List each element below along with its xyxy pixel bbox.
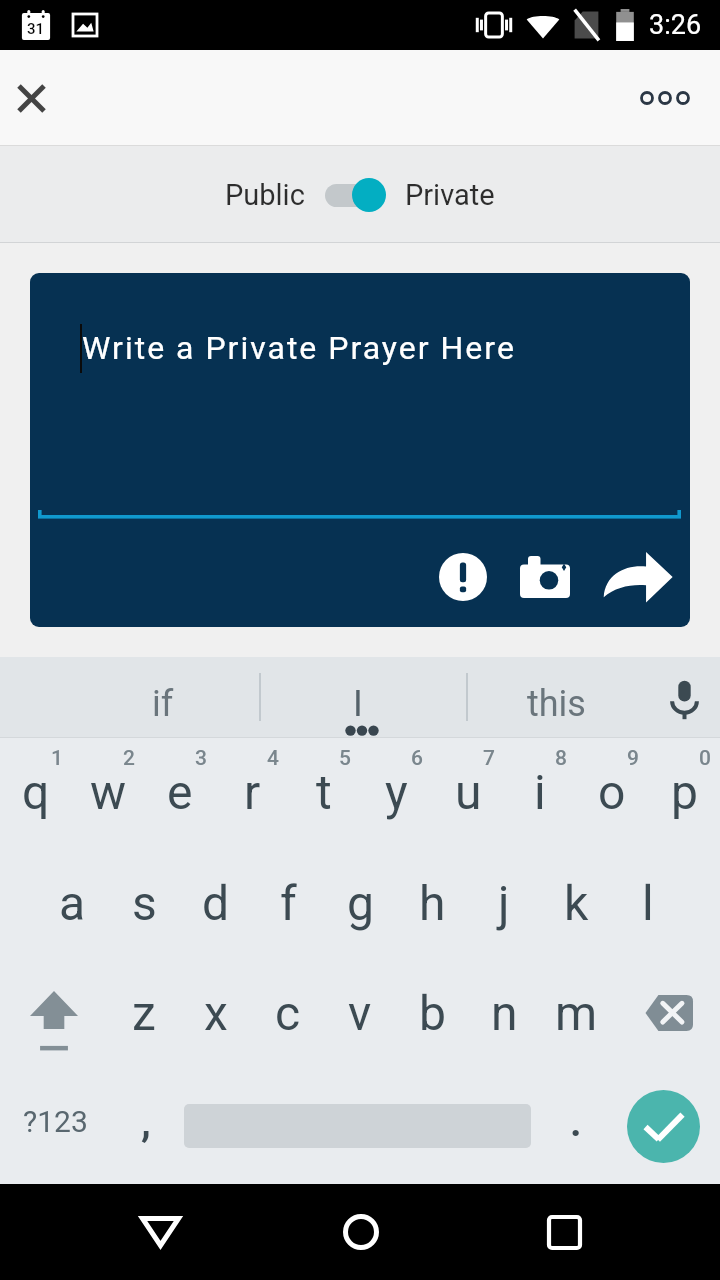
button[interactable]: Shift <box>0 958 108 1068</box>
staticText: a <box>59 875 86 931</box>
button[interactable]: c <box>252 958 324 1068</box>
staticText: 3 <box>195 746 207 771</box>
staticText: o <box>598 764 626 820</box>
staticText: y <box>385 764 408 820</box>
button[interactable]: Public <box>225 177 495 213</box>
staticText: Write a Private Prayer Here <box>82 329 516 367</box>
staticText: q <box>22 764 50 820</box>
staticText: b <box>419 985 446 1041</box>
button[interactable]: h <box>396 848 468 958</box>
staticText: Public <box>225 178 305 212</box>
button[interactable]: d <box>180 848 252 958</box>
staticText: 9 <box>627 746 639 771</box>
button[interactable]: f <box>252 848 324 958</box>
staticText: 8 <box>555 746 567 771</box>
button[interactable]: . <box>538 1068 606 1184</box>
staticText: . <box>570 1099 582 1146</box>
button[interactable]: Share <box>601 546 675 608</box>
staticText: h <box>419 875 446 931</box>
button[interactable]: j <box>468 848 540 958</box>
button[interactable]: Enter <box>606 1068 720 1184</box>
button[interactable]: ?123 <box>0 1068 119 1184</box>
staticText: s <box>132 875 157 931</box>
button[interactable]: this <box>468 657 658 737</box>
button[interactable]: l <box>612 848 684 958</box>
button[interactable]: Write a Private Prayer Here <box>30 273 690 627</box>
staticText: n <box>491 985 518 1041</box>
button[interactable]: 4 <box>216 738 288 848</box>
staticText: 1 <box>51 746 63 771</box>
button[interactable]: I <box>261 657 468 737</box>
staticText: 2 <box>123 746 135 771</box>
staticText: t <box>316 764 332 820</box>
staticText: d <box>202 875 230 931</box>
staticText: e <box>167 764 193 820</box>
staticText: 4 <box>267 746 279 771</box>
button[interactable]: Space <box>177 1068 538 1184</box>
button[interactable]: n <box>468 958 540 1068</box>
staticText: x <box>204 985 228 1041</box>
staticText: m <box>555 985 598 1041</box>
staticText: 31 <box>27 20 45 38</box>
staticText: 5 <box>339 746 351 771</box>
staticText: this <box>527 683 586 725</box>
button[interactable]: 6 <box>360 738 432 848</box>
staticText: i <box>534 764 546 820</box>
button[interactable]: x <box>180 958 252 1068</box>
button[interactable]: Backspace <box>612 958 720 1068</box>
staticText: f <box>280 875 297 931</box>
button[interactable]: a <box>36 848 108 958</box>
staticText: 7 <box>483 746 495 771</box>
button[interactable]: Recents <box>528 1192 600 1272</box>
staticText: r <box>244 764 261 820</box>
button[interactable]: s <box>108 848 180 958</box>
staticText: k <box>564 875 589 931</box>
staticText: p <box>671 764 698 820</box>
button[interactable]: Report <box>431 546 495 608</box>
button[interactable]: z <box>108 958 180 1068</box>
button[interactable]: Close <box>6 73 56 123</box>
button[interactable]: 0 <box>648 738 720 848</box>
staticText: 0 <box>699 746 711 771</box>
button[interactable]: Camera <box>513 546 577 608</box>
staticText: u <box>455 764 482 820</box>
staticText: , <box>141 1099 151 1146</box>
button[interactable]: 1 <box>0 738 72 848</box>
button[interactable]: 9 <box>576 738 648 848</box>
staticText: 3:26 <box>649 9 702 41</box>
button[interactable]: k <box>540 848 612 958</box>
button[interactable]: 7 <box>432 738 504 848</box>
button[interactable]: v <box>324 958 396 1068</box>
button[interactable]: 3 <box>144 738 216 848</box>
button[interactable]: 8 <box>504 738 576 848</box>
button[interactable]: m <box>540 958 612 1068</box>
staticText: c <box>275 985 301 1041</box>
button[interactable]: 2 <box>72 738 144 848</box>
button[interactable]: b <box>396 958 468 1068</box>
staticText: Private <box>405 178 495 212</box>
button[interactable]: if <box>65 657 261 737</box>
button[interactable]: More options <box>637 70 693 126</box>
button[interactable]: 5 <box>288 738 360 848</box>
button[interactable]: g <box>324 848 396 958</box>
button[interactable]: Home <box>325 1192 397 1272</box>
staticText: v <box>348 985 372 1041</box>
staticText: I <box>353 683 363 725</box>
staticText: j <box>498 875 510 931</box>
staticText: z <box>132 985 156 1041</box>
staticText: ?123 <box>23 1104 88 1139</box>
button[interactable]: , <box>119 1068 177 1184</box>
button[interactable]: Back <box>124 1192 196 1272</box>
staticText: l <box>642 875 654 931</box>
button[interactable]: Voice input <box>658 657 720 737</box>
staticText: g <box>347 875 374 931</box>
staticText: 6 <box>411 746 423 771</box>
staticText: if <box>152 683 174 725</box>
staticText: w <box>90 764 127 820</box>
